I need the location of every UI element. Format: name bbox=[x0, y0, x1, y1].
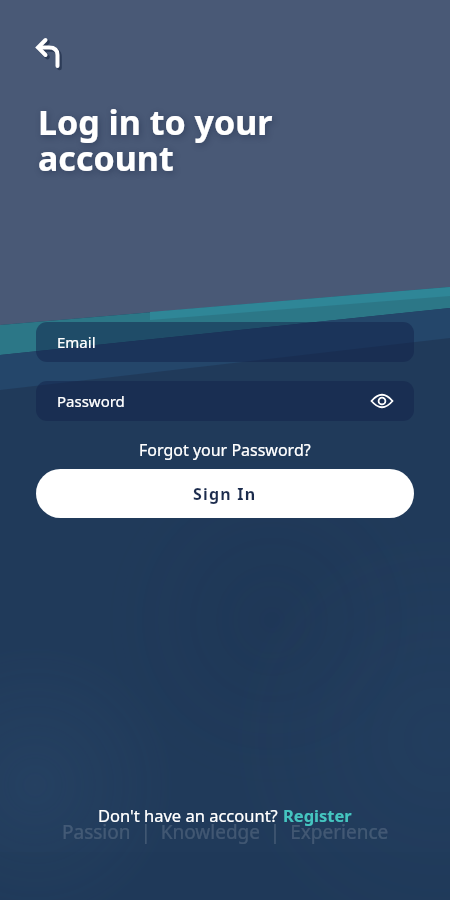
staticText: Passion | Knowledge | Experience bbox=[62, 819, 389, 845]
staticText: Email bbox=[57, 332, 96, 352]
staticText: Sign In bbox=[193, 483, 257, 505]
button[interactable]: Register bbox=[283, 804, 352, 826]
button[interactable]: Email bbox=[36, 322, 414, 362]
staticText: Log in to your account bbox=[38, 99, 273, 181]
staticText: Password bbox=[57, 391, 125, 411]
button[interactable] bbox=[30, 30, 70, 70]
staticText: Don't have an account? bbox=[98, 804, 283, 826]
button[interactable]: Password bbox=[36, 381, 414, 421]
button[interactable]: Sign In bbox=[36, 469, 414, 518]
button[interactable]: Forgot your Password? bbox=[139, 439, 311, 461]
